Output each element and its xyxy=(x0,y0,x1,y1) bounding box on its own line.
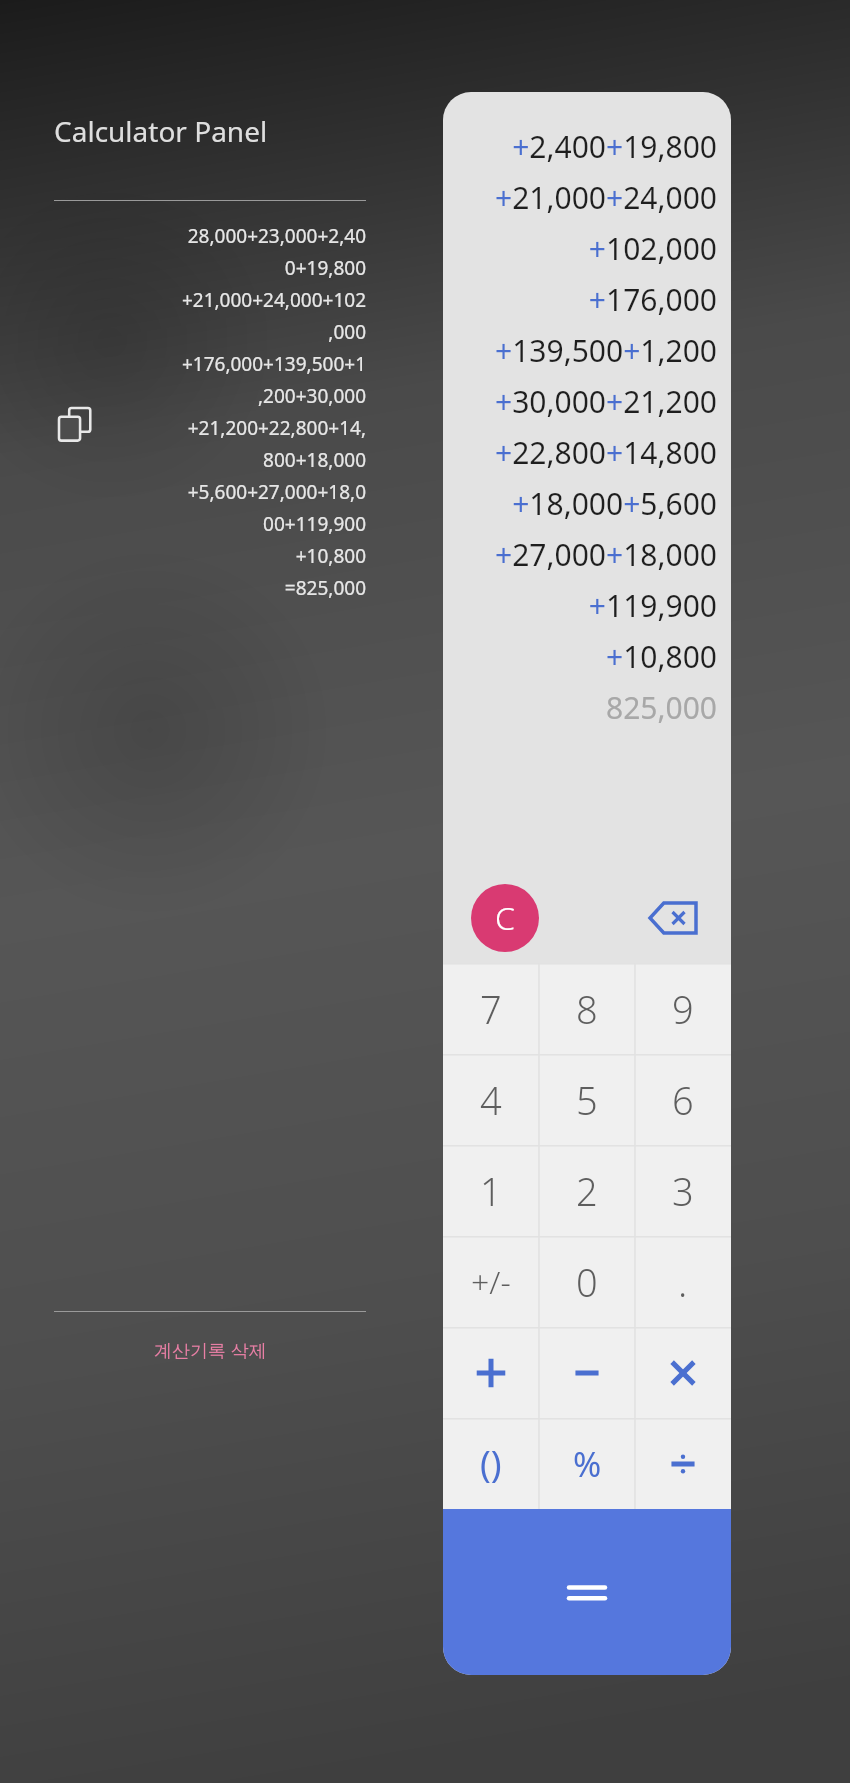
staticText: 00+119,900 xyxy=(263,511,366,537)
staticText: =825,000 xyxy=(284,575,366,601)
staticText: +176,000 xyxy=(588,279,717,320)
staticText: 6 xyxy=(672,1074,694,1126)
button[interactable]: 2 xyxy=(539,1145,635,1236)
staticText: +2,400+19,800 xyxy=(512,126,717,167)
staticText: +27,000+18,000 xyxy=(495,534,717,575)
button[interactable]: Copy xyxy=(54,403,98,447)
staticText: +176,000+139,500+1 xyxy=(181,351,366,377)
staticText: 0+19,800 xyxy=(284,255,366,281)
button[interactable] xyxy=(539,1327,635,1418)
button[interactable] xyxy=(635,1327,731,1418)
staticText: Calculator Panel xyxy=(54,112,268,150)
staticText: 800+18,000 xyxy=(263,447,366,473)
button[interactable]: Backspace xyxy=(639,884,707,952)
staticText: C xyxy=(495,896,515,940)
button[interactable]: . xyxy=(635,1236,731,1327)
staticText: 3 xyxy=(672,1165,694,1217)
button[interactable] xyxy=(635,1418,731,1509)
staticText: +10,800 xyxy=(295,543,366,569)
staticText: 4 xyxy=(480,1074,502,1126)
button[interactable] xyxy=(443,1327,539,1418)
button[interactable]: +/- xyxy=(443,1236,539,1327)
staticText: +139,500+1,200 xyxy=(495,330,717,371)
button[interactable]: 계산기록 삭제 xyxy=(54,1338,366,1363)
staticText: +5,600+27,000+18,0 xyxy=(187,479,366,505)
staticText: +21,000+24,000+102 xyxy=(181,287,366,313)
staticText: ,000 xyxy=(328,319,366,345)
button[interactable]: 6 xyxy=(635,1054,731,1145)
staticText: () xyxy=(480,1439,502,1488)
staticText: 0 xyxy=(576,1256,598,1308)
button[interactable]: 8 xyxy=(539,963,635,1054)
button[interactable]: 4 xyxy=(443,1054,539,1145)
button[interactable]: 3 xyxy=(635,1145,731,1236)
button[interactable]: 9 xyxy=(635,963,731,1054)
staticText: +119,900 xyxy=(588,585,717,626)
staticText: 7 xyxy=(480,983,502,1035)
button[interactable]: 5 xyxy=(539,1054,635,1145)
staticText: 8 xyxy=(576,983,598,1035)
staticText: +30,000+21,200 xyxy=(495,381,717,422)
button[interactable]: Equals xyxy=(443,1509,731,1675)
staticText: 계산기록 삭제 xyxy=(154,1338,267,1363)
staticText: . xyxy=(678,1256,688,1308)
button[interactable]: 7 xyxy=(443,963,539,1054)
staticText: % xyxy=(573,1441,602,1487)
button[interactable]: 0 xyxy=(539,1236,635,1327)
staticText: ,200+30,000 xyxy=(258,383,366,409)
button[interactable]: 1 xyxy=(443,1145,539,1236)
staticText: 5 xyxy=(576,1074,598,1126)
staticText: 28,000+23,000+2,40 xyxy=(187,223,366,249)
button[interactable]: % xyxy=(539,1418,635,1509)
staticText: +21,200+22,800+14, xyxy=(187,415,366,441)
staticText: +21,000+24,000 xyxy=(495,177,717,218)
staticText: +/- xyxy=(471,1260,511,1304)
staticText: +102,000 xyxy=(588,228,717,269)
staticText: +22,800+14,800 xyxy=(495,432,717,473)
staticText: 1 xyxy=(480,1165,502,1217)
staticText: 9 xyxy=(672,983,694,1035)
button[interactable]: C xyxy=(471,884,539,952)
staticText: 825,000 xyxy=(606,687,717,728)
staticText: +10,800 xyxy=(606,636,717,677)
button[interactable]: () xyxy=(443,1418,539,1509)
staticText: +18,000+5,600 xyxy=(512,483,717,524)
staticText: 2 xyxy=(576,1165,598,1217)
